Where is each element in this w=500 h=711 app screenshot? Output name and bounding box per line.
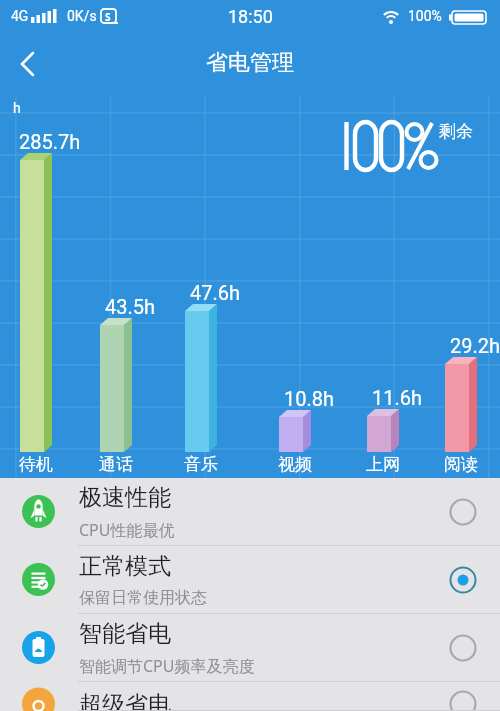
staticText: 0K/s (67, 8, 97, 24)
staticText: 阅读 (444, 454, 478, 475)
button[interactable] (0, 36, 56, 92)
staticText: 上网 (366, 454, 400, 475)
staticText: 100% (408, 8, 442, 24)
button[interactable]: 智能省电 (0, 614, 500, 682)
staticText: 待机 (19, 454, 53, 475)
staticText: 超级省电 (79, 690, 171, 711)
staticText: 智能省电 (79, 619, 171, 648)
staticText: 43.5h (105, 295, 156, 318)
staticText: 极速性能 (79, 483, 171, 512)
staticText: 29.2h (450, 334, 500, 357)
staticText: 音乐 (184, 454, 218, 475)
staticText: 视频 (278, 454, 312, 475)
staticText: 18:50 (228, 6, 273, 27)
staticText: 285.7h (19, 130, 81, 153)
staticText: 10.8h (284, 387, 335, 410)
staticText: 智能调节CPU频率及亮度 (79, 655, 255, 677)
staticText: 4G (11, 8, 29, 24)
staticText: 47.6h (190, 281, 241, 304)
button[interactable]: 超级省电 (0, 682, 500, 711)
staticText: 省电管理 (206, 49, 294, 77)
staticText: 正常模式 (79, 552, 171, 581)
staticText: 保留日常使用状态 (79, 588, 207, 608)
staticText: 通话 (99, 454, 133, 475)
staticText: CPU性能最优 (79, 519, 175, 541)
button[interactable]: 正常模式 (0, 546, 500, 614)
staticText: 11.6h (372, 386, 423, 409)
staticText: S (105, 10, 111, 24)
staticText: 剩余 (439, 121, 473, 142)
button[interactable]: 极速性能 (0, 478, 500, 546)
staticText: h (13, 100, 21, 116)
